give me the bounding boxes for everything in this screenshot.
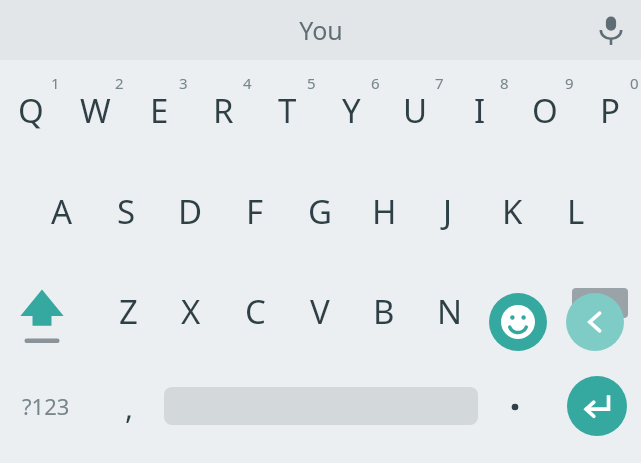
button[interactable]: M bbox=[482, 281, 546, 341]
staticText: C bbox=[245, 289, 266, 334]
staticText: Q bbox=[18, 88, 44, 133]
button[interactable]: Emoji bbox=[489, 293, 547, 351]
staticText: O bbox=[532, 88, 558, 133]
button[interactable]: Delete bbox=[566, 293, 624, 351]
staticText: 9 bbox=[565, 73, 574, 93]
staticText: T bbox=[278, 88, 297, 133]
button[interactable]: F bbox=[223, 181, 287, 241]
staticText: K bbox=[502, 189, 523, 234]
staticText: 0 bbox=[630, 73, 639, 93]
button[interactable]: V bbox=[288, 281, 352, 341]
button[interactable] bbox=[486, 378, 544, 436]
staticText: You bbox=[299, 13, 343, 47]
button[interactable]: C bbox=[223, 281, 287, 341]
staticText: M bbox=[499, 289, 529, 334]
button[interactable]: ?123 bbox=[0, 376, 92, 436]
button[interactable]: H bbox=[352, 181, 416, 241]
button[interactable]: K bbox=[480, 181, 544, 241]
staticText: H bbox=[372, 189, 397, 234]
button[interactable]: G bbox=[288, 181, 352, 241]
button[interactable]: Enter bbox=[567, 376, 627, 436]
staticText: U bbox=[403, 88, 428, 133]
staticText: Z bbox=[119, 289, 138, 334]
staticText: 2 bbox=[115, 73, 124, 93]
staticText: G bbox=[308, 189, 333, 234]
staticText: D bbox=[178, 189, 203, 234]
button[interactable]: Voice input bbox=[581, 0, 641, 60]
button[interactable]: R bbox=[191, 83, 255, 138]
button[interactable]: Y bbox=[319, 83, 383, 138]
staticText: P bbox=[600, 88, 620, 133]
staticText: S bbox=[117, 189, 136, 234]
staticText: B bbox=[373, 289, 395, 334]
staticText: , bbox=[125, 387, 134, 428]
button[interactable]: S bbox=[94, 181, 158, 241]
staticText: R bbox=[213, 88, 234, 133]
button[interactable]: Q bbox=[0, 83, 63, 138]
staticText: 4 bbox=[243, 73, 252, 93]
staticText: X bbox=[181, 289, 201, 334]
staticText: W bbox=[80, 88, 111, 133]
button[interactable]: U bbox=[383, 83, 447, 138]
button[interactable]: X bbox=[159, 281, 223, 341]
staticText: ?123 bbox=[22, 391, 70, 421]
staticText: 3 bbox=[179, 73, 188, 93]
staticText: Y bbox=[342, 88, 361, 133]
button[interactable]: B bbox=[352, 281, 416, 341]
button[interactable]: T bbox=[255, 83, 319, 138]
staticText: A bbox=[51, 189, 73, 234]
button[interactable]: W bbox=[63, 83, 127, 138]
staticText: 7 bbox=[435, 73, 444, 93]
button[interactable]: You bbox=[221, 0, 421, 60]
button[interactable]: J bbox=[416, 181, 480, 241]
staticText: 5 bbox=[307, 73, 316, 93]
staticText: L bbox=[567, 189, 585, 234]
staticText: J bbox=[443, 189, 453, 234]
staticText: 8 bbox=[500, 73, 509, 93]
staticText: F bbox=[246, 189, 264, 234]
button[interactable]: L bbox=[544, 181, 608, 241]
button[interactable]: Shift bbox=[4, 277, 80, 355]
staticText: N bbox=[437, 289, 463, 334]
staticText: 6 bbox=[371, 73, 380, 93]
button[interactable]: E bbox=[127, 83, 191, 138]
button[interactable]: D bbox=[158, 181, 222, 241]
button[interactable]: , bbox=[98, 378, 160, 436]
button[interactable]: I bbox=[448, 83, 512, 138]
staticText: I bbox=[474, 88, 486, 133]
button[interactable]: N bbox=[418, 281, 482, 341]
staticText: E bbox=[150, 88, 169, 133]
staticText: 1 bbox=[51, 73, 60, 93]
staticText: V bbox=[310, 289, 330, 334]
button[interactable]: O bbox=[513, 83, 577, 138]
button[interactable]: P bbox=[578, 83, 641, 138]
button[interactable]: A bbox=[30, 181, 94, 241]
button[interactable]: Z bbox=[96, 281, 160, 341]
